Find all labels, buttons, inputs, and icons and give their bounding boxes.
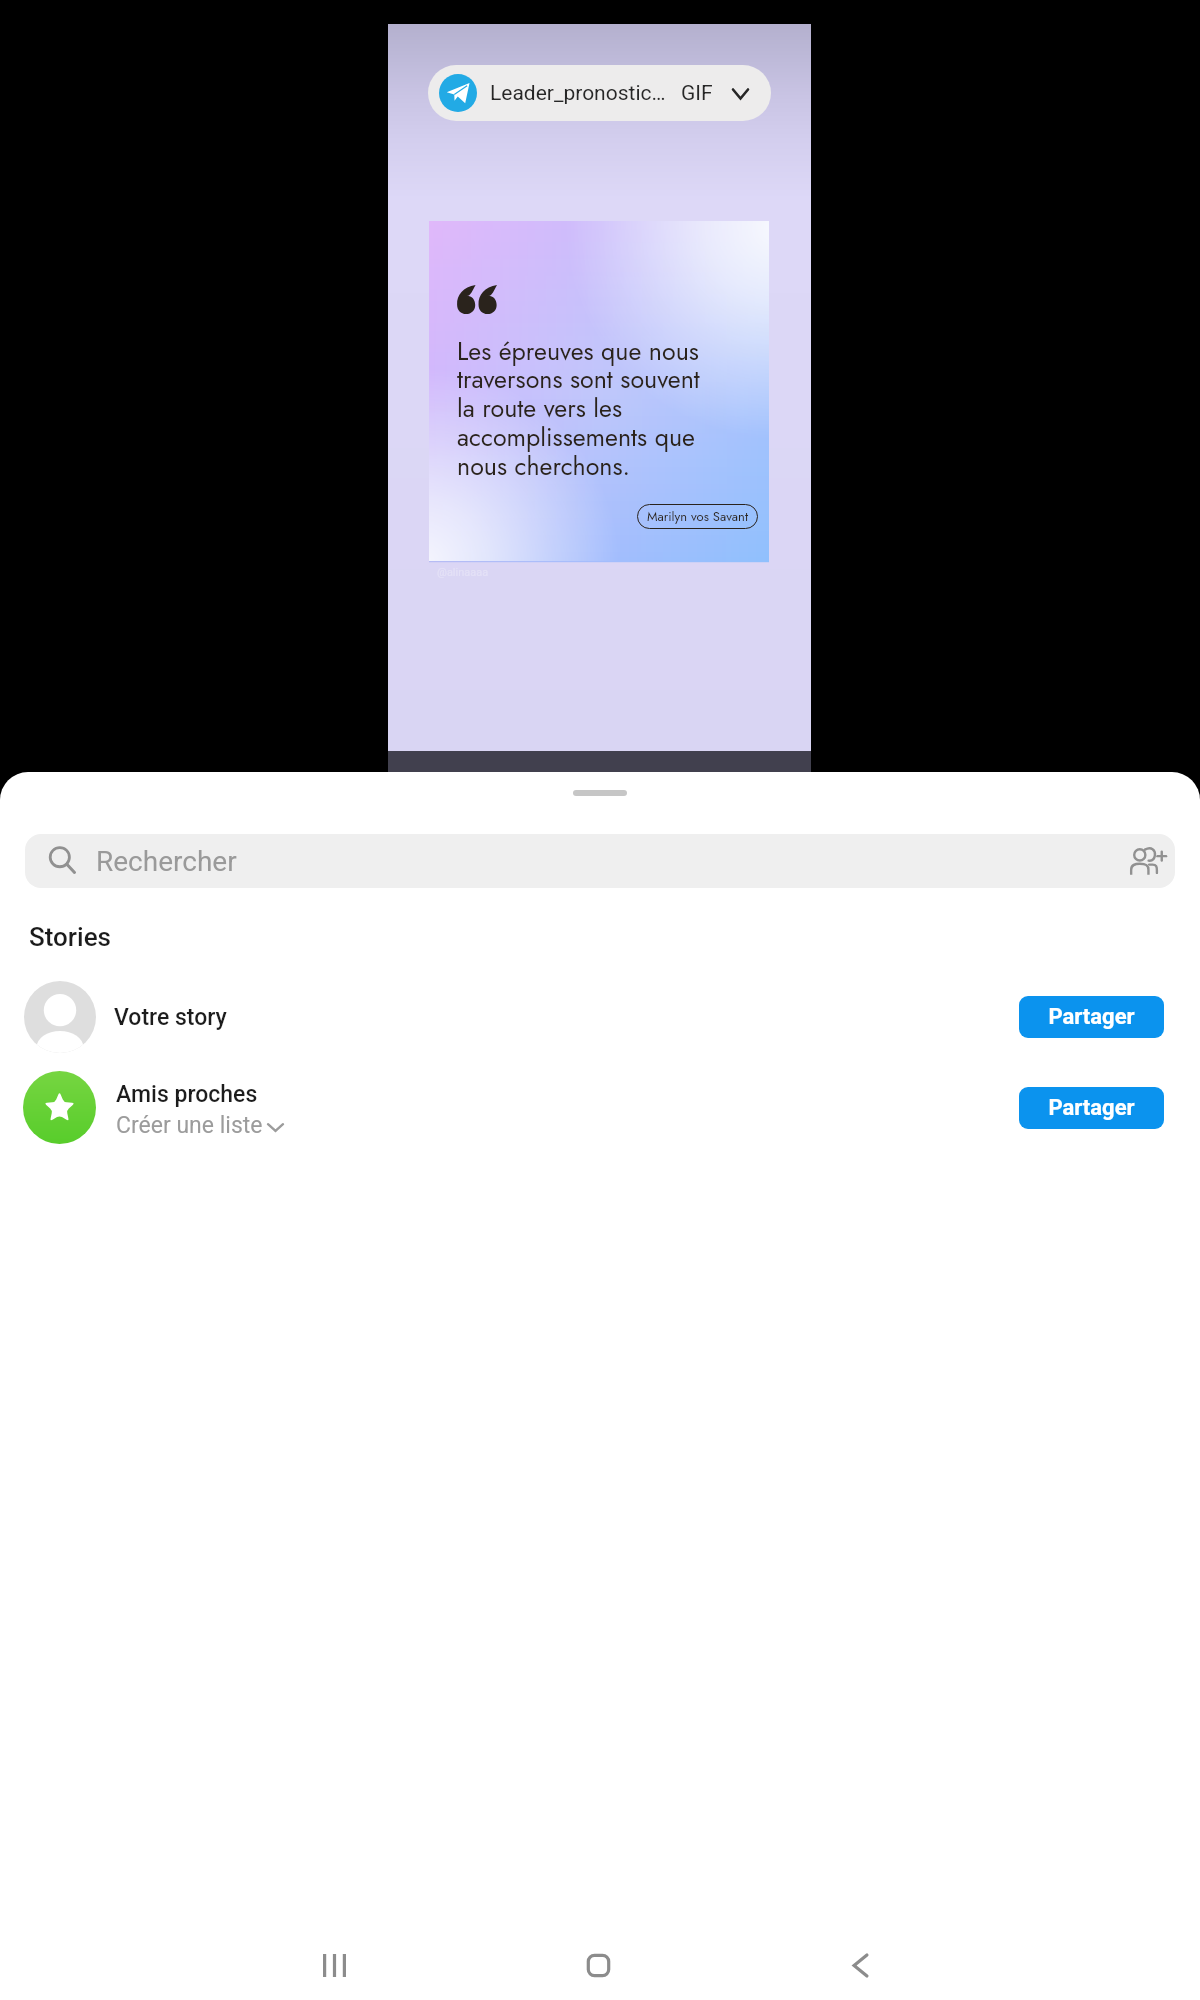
button[interactable]: Partager (1019, 1087, 1164, 1129)
staticText: Marilyn vos Savant (647, 507, 749, 526)
staticText: Amis proches (116, 1081, 258, 1108)
button[interactable]: Accueil (568, 1935, 628, 1995)
button[interactable]: Récents (304, 1935, 364, 1995)
staticText: Partager (1048, 1004, 1135, 1030)
staticText: GIF (681, 81, 713, 106)
button[interactable]: Créer une liste (116, 1112, 283, 1139)
staticText: @alinaaaa (437, 566, 489, 579)
staticText: Rechercher (96, 845, 237, 878)
staticText: Leader_pronostic… (490, 81, 666, 106)
button[interactable]: Aperçu de la story (429, 221, 769, 561)
staticText: Partager (1048, 1095, 1135, 1121)
button[interactable]: Retour (830, 1935, 890, 1995)
button[interactable]: Leader_pronostic… (428, 65, 771, 121)
button[interactable]: Partager (1019, 996, 1164, 1038)
button[interactable]: Ajouter des personnes (1125, 839, 1169, 883)
staticText: Votre story (114, 1004, 227, 1031)
button[interactable]: Fermer la feuille (573, 790, 627, 796)
staticText: Stories (29, 922, 111, 952)
button[interactable]: Votre story (0, 977, 1200, 1057)
button[interactable]: Rechercher (25, 834, 1175, 888)
button[interactable]: Amis proches (0, 1066, 1200, 1154)
staticText: Créer une liste (116, 1112, 263, 1139)
staticText: Les épreuves que nous traversons sont so… (457, 333, 700, 485)
